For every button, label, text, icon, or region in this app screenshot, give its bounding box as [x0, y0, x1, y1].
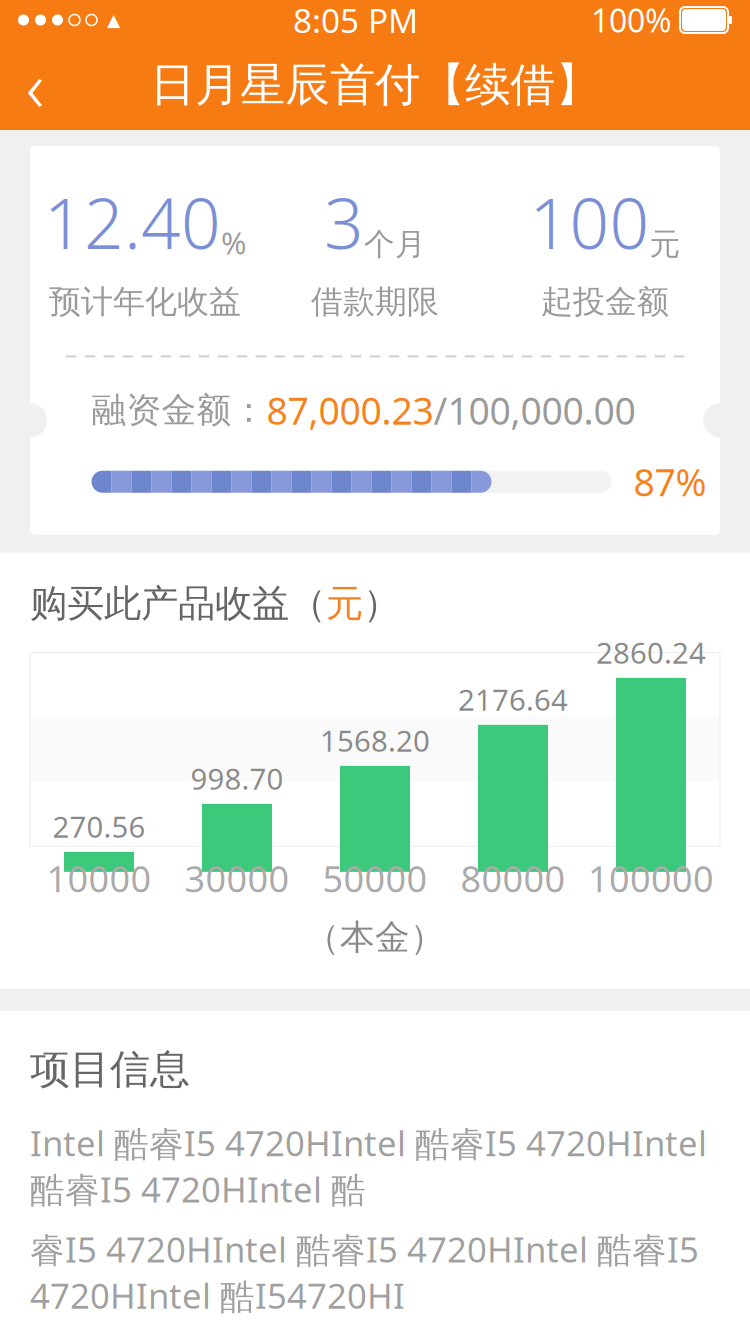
staticText: 睿I5 4720HIntel 酷睿I5 4720HIntel 酷睿I5 4720… [30, 1226, 699, 1318]
staticText: 998.70 [190, 759, 283, 798]
staticText: 2176.64 [458, 680, 568, 719]
staticText: ） [363, 580, 400, 626]
staticText: 元 [326, 580, 363, 626]
staticText: 项目信息 [30, 1045, 190, 1094]
staticText: 购买此产品收益（ [30, 580, 326, 626]
staticText: 80000 [460, 854, 565, 902]
staticText: Intel 酷睿I5 4720HIntel 酷睿I5 4720HIntel 酷睿… [30, 1120, 707, 1212]
staticText: 10000 [46, 854, 151, 902]
staticText: 30000 [184, 854, 289, 902]
staticText: % [221, 222, 246, 263]
staticText: 个月 [364, 225, 426, 263]
staticText: 3 [324, 176, 364, 268]
staticText: 100 [529, 176, 649, 268]
staticText: 1568.20 [320, 721, 430, 760]
staticText: 87,000.23 [266, 385, 433, 435]
staticText: 12.40 [44, 176, 221, 268]
staticText: 起投金额 [541, 282, 669, 321]
staticText: 融资金额： [91, 389, 266, 431]
staticText: 100% [591, 0, 672, 41]
staticText: ‹ [26, 39, 44, 131]
button[interactable]: Back [0, 45, 70, 125]
staticText: （本金） [305, 916, 445, 959]
staticText: 87% [633, 457, 706, 507]
staticText: 270.56 [52, 807, 145, 846]
staticText: 日月星辰首付【续借】 [150, 57, 600, 113]
staticText: 2860.24 [596, 633, 706, 672]
staticText: ▲ [107, 10, 120, 30]
staticText: 预计年化收益 [49, 282, 241, 321]
staticText: /100,000.00 [433, 385, 635, 435]
staticText: 50000 [322, 854, 427, 902]
staticText: 借款期限 [311, 282, 439, 321]
staticText: 元 [649, 225, 680, 263]
staticText: 8:05 PM [293, 0, 418, 42]
staticText: 100000 [588, 854, 714, 902]
